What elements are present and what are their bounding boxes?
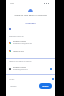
button[interactable]: Adauga alt cont xyxy=(6,50,55,52)
staticText: Alt cont xyxy=(9,78,15,80)
button[interactable]: Continua xyxy=(39,83,52,89)
staticText: Continua xyxy=(42,85,49,87)
staticText: Evangelina Costea xyxy=(13,66,26,68)
staticText: Evangelina Costea xyxy=(13,40,26,42)
staticText: Alege un cont pentru a continua xyxy=(9,60,32,62)
button[interactable]: Anuleaza xyxy=(9,84,18,88)
staticText: Selecteaza contul tau xyxy=(9,35,24,37)
staticText: Umbrella xyxy=(6,22,55,25)
staticText: Alege un cont pentru a continua xyxy=(9,14,52,17)
staticText: evangelina@gmail.com xyxy=(13,69,28,71)
button[interactable]: Evangelina Costea xyxy=(6,40,55,45)
button[interactable]: Evangelina Costea xyxy=(6,66,55,71)
staticText: Adauga alt cont xyxy=(13,50,24,52)
staticText: Anuleaza xyxy=(10,85,17,87)
staticText: evangelina.costea@gmail.com xyxy=(13,43,33,45)
staticText: 10:24 xyxy=(10,2,14,4)
